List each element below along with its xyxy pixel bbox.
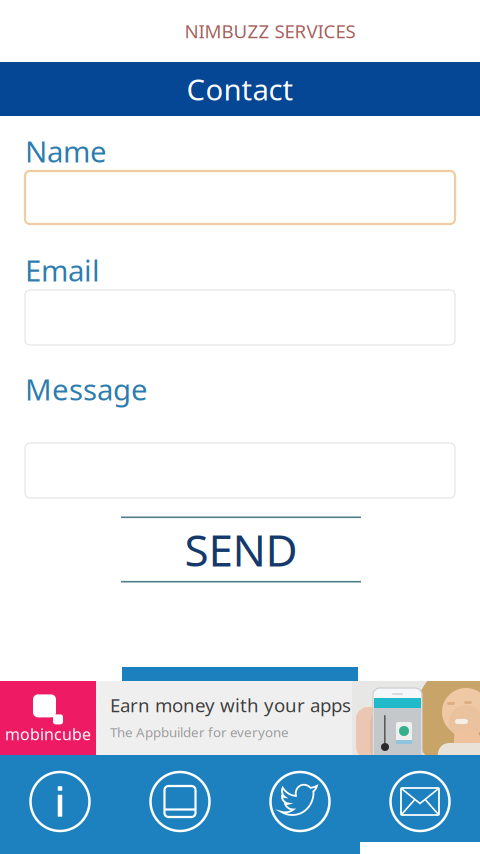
staticText: Message [25,369,148,408]
staticText: The Appbuilder for everyone [110,723,289,741]
button[interactable]: Info [0,755,120,854]
button[interactable]: Attach [122,667,358,707]
button[interactable]: Contact us [360,755,480,854]
button[interactable]: Twitter [240,755,360,854]
button[interactable]: Advertisement: Earn money with your apps [0,681,480,755]
button[interactable]: Pages [120,755,240,854]
staticText: Earn money with your apps [110,693,351,717]
button[interactable] [25,290,455,345]
staticText: SEND [184,520,297,579]
button[interactable] [25,443,455,498]
staticText: mobincube [5,723,91,745]
staticText: Contact [186,69,293,108]
button[interactable] [25,171,455,224]
button[interactable]: Contact [0,62,480,116]
staticText: Name [25,131,107,170]
staticText: NIMBUZZ SERVICES [184,19,355,43]
button[interactable]: SEND [121,516,361,582]
staticText: Email [25,250,100,289]
